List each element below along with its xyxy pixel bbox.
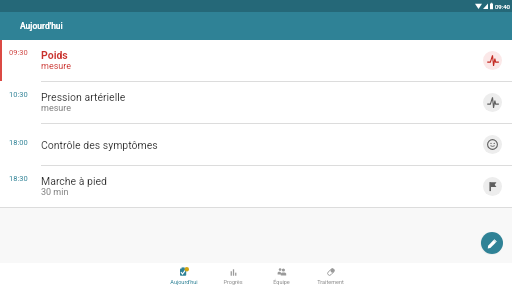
button[interactable]: Poids bbox=[483, 51, 502, 70]
staticText: Poids bbox=[41, 49, 68, 61]
staticText: mesure bbox=[41, 61, 72, 72]
staticText: 30 min bbox=[41, 187, 69, 198]
button[interactable]: 18:00 bbox=[0, 124, 512, 165]
staticText: Marche à pied bbox=[41, 175, 108, 187]
staticText: 18:30 bbox=[9, 174, 28, 183]
staticText: Traitement bbox=[317, 279, 344, 285]
staticText: Aujourd'hui bbox=[170, 279, 198, 285]
staticText: Contrôle des symptômes bbox=[41, 139, 158, 151]
staticText: 18:00 bbox=[9, 138, 28, 147]
button[interactable]: 18:30 bbox=[0, 166, 512, 207]
button[interactable]: 10:30 bbox=[0, 82, 512, 123]
button[interactable]: Progrès bbox=[208, 263, 257, 288]
button[interactable]: Pression artérielle bbox=[483, 93, 502, 112]
button[interactable]: Marche à pied bbox=[483, 177, 502, 196]
staticText: 10:30 bbox=[9, 90, 28, 99]
staticText: mesure bbox=[41, 103, 72, 114]
staticText: 09:40 bbox=[495, 3, 510, 10]
button[interactable]: Traitement bbox=[306, 263, 355, 288]
button[interactable]: Contrôle des symptômes bbox=[483, 135, 502, 154]
staticText: Équipe bbox=[273, 279, 290, 285]
staticText: 09:30 bbox=[9, 48, 28, 57]
button[interactable]: Équipe bbox=[257, 263, 306, 288]
button[interactable]: Aujourd'hui bbox=[159, 263, 208, 288]
button[interactable]: 09:30 bbox=[0, 40, 512, 81]
staticText: Progrès bbox=[223, 279, 243, 285]
staticText: Pression artérielle bbox=[41, 91, 126, 103]
button[interactable]: Add entry bbox=[481, 232, 503, 254]
staticText: Aujourd'hui bbox=[20, 21, 63, 31]
